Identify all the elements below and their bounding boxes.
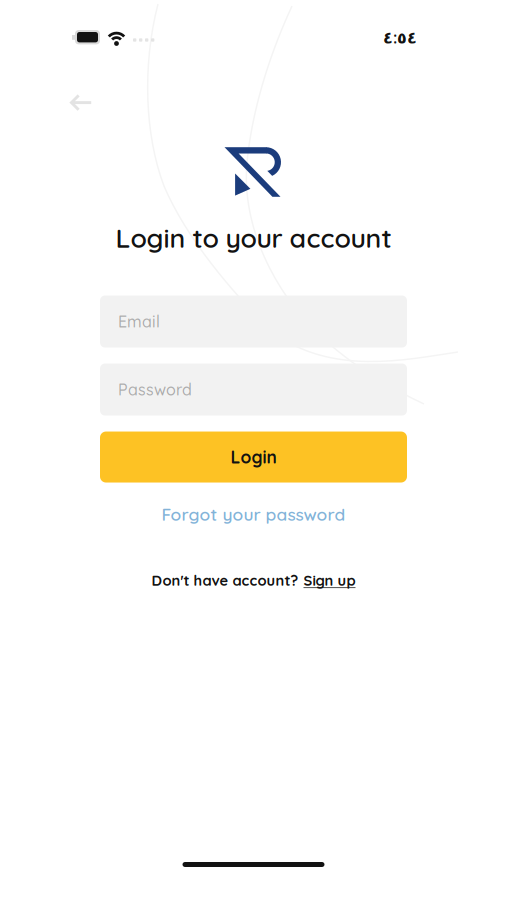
- staticText: Email: [118, 311, 160, 331]
- staticText: Login: [230, 446, 276, 468]
- staticText: ٤:٥٤: [383, 27, 417, 47]
- staticText: Don't have account?: [151, 571, 298, 589]
- staticText: Login to your account: [115, 221, 391, 254]
- button[interactable]: Back: [56, 83, 104, 122]
- button[interactable]: Email: [100, 295, 407, 347]
- staticText: Password: [118, 379, 192, 399]
- button[interactable]: Sign up: [303, 571, 355, 589]
- button[interactable]: Login: [100, 431, 407, 482]
- staticText: Forgot your password: [161, 503, 345, 525]
- button[interactable]: Password: [100, 363, 407, 415]
- staticText: Sign up: [303, 571, 355, 589]
- button[interactable]: Forgot your password: [151, 497, 355, 531]
